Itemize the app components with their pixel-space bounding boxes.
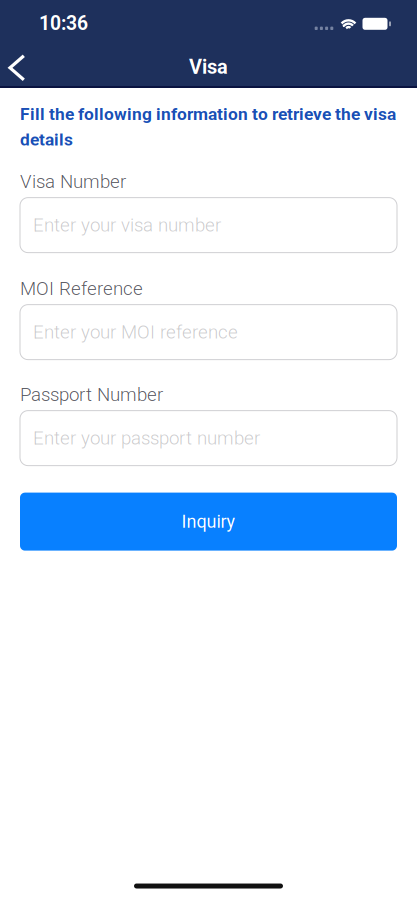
staticText: Passport Number <box>20 384 163 406</box>
staticText: Enter your visa number <box>33 214 221 236</box>
staticText: Enter your MOI reference <box>33 321 238 343</box>
staticText: Fill the following information to retrie… <box>20 104 396 150</box>
staticText: MOI Reference <box>20 278 143 300</box>
staticText: 10:36 <box>39 12 88 35</box>
staticText: Enter your passport number <box>33 427 260 449</box>
button[interactable]: Enter your visa number <box>20 198 397 253</box>
button[interactable]: Back <box>0 44 40 86</box>
button[interactable]: Inquiry <box>20 493 397 551</box>
staticText: Inquiry <box>181 511 235 532</box>
staticText: Visa <box>189 55 228 79</box>
staticText: Visa Number <box>20 171 126 193</box>
button[interactable]: Enter your MOI reference <box>20 305 397 360</box>
button[interactable]: Enter your passport number <box>20 411 397 466</box>
